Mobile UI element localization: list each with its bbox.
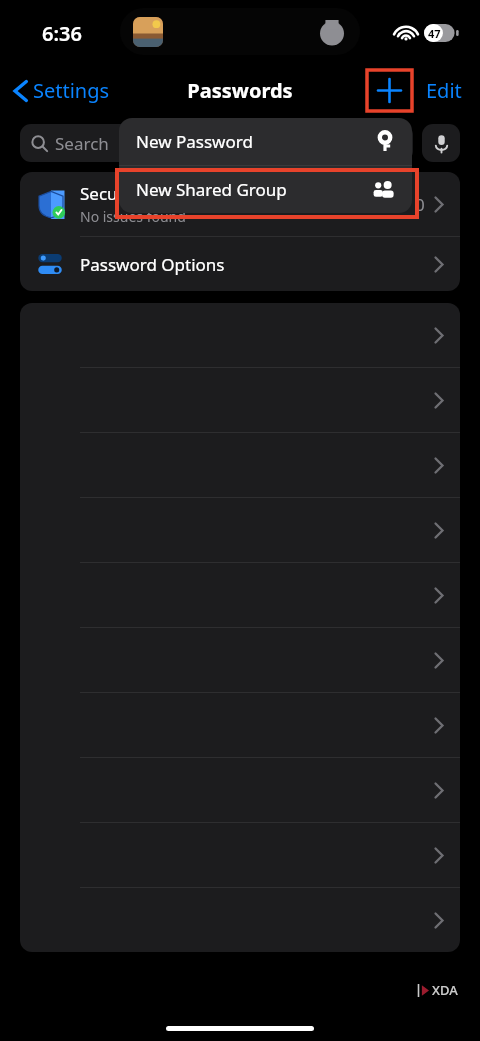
- button[interactable]: [20, 888, 460, 952]
- button[interactable]: Search: [20, 124, 413, 162]
- button[interactable]: Settings: [10, 73, 114, 108]
- button[interactable]: Security Recommendations: [20, 172, 460, 236]
- staticText: 47: [428, 26, 441, 41]
- staticText: 0: [415, 193, 425, 216]
- staticText: New Password: [136, 130, 375, 153]
- staticText: Security Recommendations: [80, 182, 299, 205]
- button[interactable]: New Password: [119, 118, 412, 165]
- button[interactable]: [20, 823, 460, 887]
- staticText: XDA: [432, 981, 458, 999]
- button[interactable]: [20, 628, 460, 692]
- button[interactable]: Voice search: [422, 124, 460, 162]
- staticText: Search: [55, 132, 109, 155]
- button[interactable]: [20, 303, 460, 367]
- button[interactable]: Password Options: [20, 237, 460, 291]
- button[interactable]: [20, 433, 460, 497]
- staticText: Passwords: [187, 77, 293, 104]
- button[interactable]: New Shared Group: [119, 166, 412, 213]
- button[interactable]: [20, 693, 460, 757]
- staticText: 6:36: [42, 20, 82, 47]
- button[interactable]: [20, 498, 460, 562]
- button[interactable]: Edit: [426, 77, 462, 104]
- staticText: No issues found: [80, 207, 186, 226]
- button[interactable]: [20, 368, 460, 432]
- button[interactable]: [20, 758, 460, 822]
- staticText: Password Options: [80, 253, 434, 276]
- button[interactable]: [20, 563, 460, 627]
- staticText: Settings: [33, 77, 110, 104]
- staticText: New Shared Group: [136, 178, 372, 201]
- button[interactable]: Add: [367, 70, 412, 111]
